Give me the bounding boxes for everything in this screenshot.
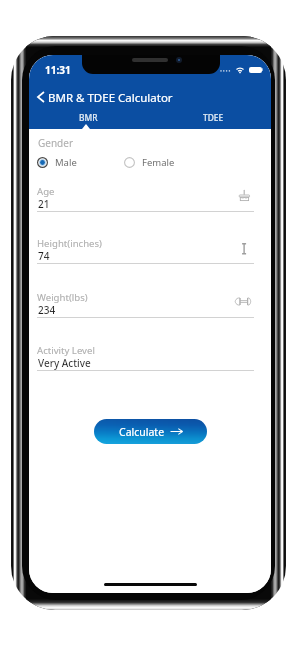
staticText: TDEE <box>203 112 224 123</box>
staticText: Height(inches) <box>37 237 102 250</box>
button[interactable]: Height(inches) <box>37 238 254 265</box>
button[interactable]: BMR <box>29 110 148 124</box>
staticText: 234 <box>38 303 56 317</box>
button[interactable]: Male <box>34 154 77 170</box>
staticText: Gender <box>38 136 74 150</box>
staticText: 11:31 <box>45 63 71 77</box>
button[interactable]: Calculate <box>94 419 207 444</box>
button[interactable]: Activity Level <box>37 345 254 372</box>
staticText: Calculate <box>119 425 165 439</box>
button[interactable]: Female <box>121 154 175 170</box>
staticText: Activity Level <box>37 344 95 357</box>
staticText: BMR & TDEE Calculator <box>48 90 173 106</box>
staticText: Weight(lbs) <box>37 291 88 304</box>
button[interactable]: Back <box>32 89 48 105</box>
staticText: Female <box>142 156 175 169</box>
button[interactable]: Age <box>37 186 254 213</box>
staticText: BMR <box>79 112 98 123</box>
button[interactable]: TDEE <box>154 110 271 124</box>
staticText: Male <box>55 156 77 169</box>
button[interactable]: Weight(lbs) <box>37 292 254 319</box>
staticText: 74 <box>38 249 50 263</box>
staticText: Very Active <box>38 356 91 370</box>
staticText: Age <box>37 185 55 198</box>
staticText: 21 <box>38 197 50 211</box>
